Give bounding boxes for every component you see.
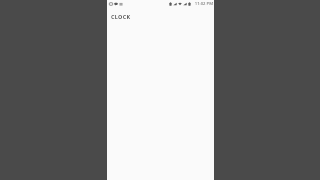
button[interactable]: CLOCK [111, 13, 131, 20]
staticText: 11:02 PM [194, 1, 213, 7]
staticText: CLOCK [111, 13, 131, 20]
button[interactable]: CLOCK [107, 7, 214, 26]
